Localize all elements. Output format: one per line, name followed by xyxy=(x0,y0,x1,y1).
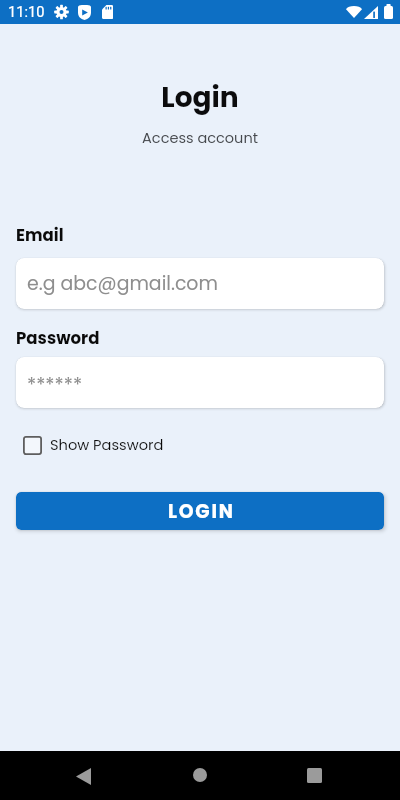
button[interactable]: Home xyxy=(176,759,223,800)
staticText: Access account xyxy=(0,128,400,148)
button[interactable]: LOGIN xyxy=(16,492,384,530)
staticText: ****** xyxy=(27,372,83,398)
button[interactable]: Back xyxy=(60,759,107,800)
button[interactable]: Show Password xyxy=(23,435,164,455)
staticText: Password xyxy=(16,327,100,350)
button[interactable]: ****** xyxy=(16,357,384,408)
button[interactable]: e.g abc@gmail.com xyxy=(16,258,384,309)
staticText: LOGIN xyxy=(168,498,235,524)
button[interactable]: Recent apps xyxy=(291,759,338,800)
staticText: Login xyxy=(0,78,400,117)
staticText: 11:10 xyxy=(8,3,45,20)
staticText: Email xyxy=(16,224,64,247)
staticText: e.g abc@gmail.com xyxy=(27,270,218,296)
staticText: Show Password xyxy=(50,435,164,455)
